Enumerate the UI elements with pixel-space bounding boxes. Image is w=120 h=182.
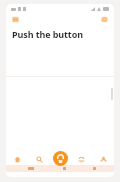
button[interactable]: Search <box>34 154 44 164</box>
button[interactable]: Menu <box>11 15 20 24</box>
button[interactable]: Profile <box>98 154 108 164</box>
button[interactable]: Home <box>12 154 22 164</box>
button[interactable]: More options <box>100 15 109 24</box>
button[interactable]: Push the button <box>53 151 68 166</box>
button[interactable]: Alerts <box>76 154 86 164</box>
staticText: Push the button <box>12 28 83 40</box>
